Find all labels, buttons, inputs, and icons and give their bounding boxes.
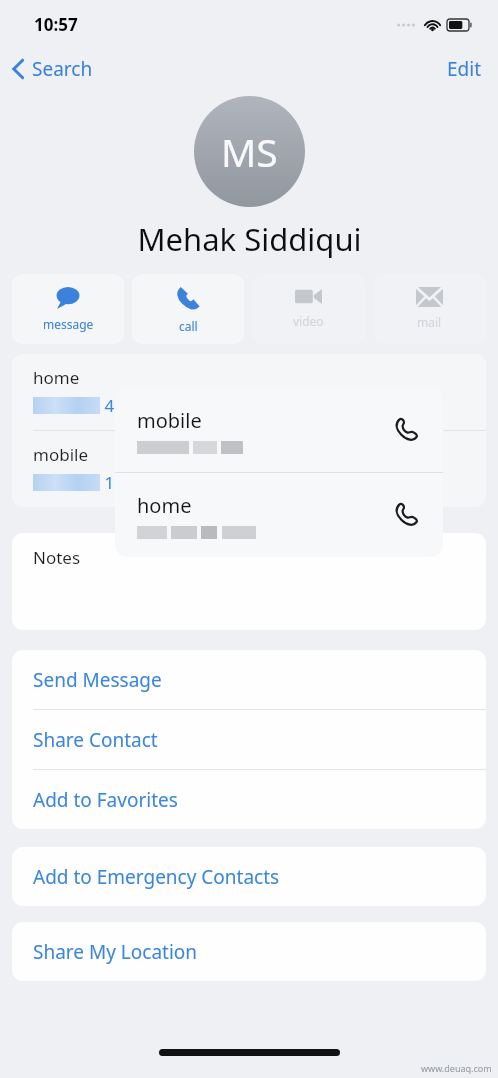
button[interactable]: mail bbox=[373, 274, 486, 344]
button[interactable]: Search bbox=[0, 52, 103, 86]
other: Call home bbox=[389, 498, 423, 532]
staticText: Edit bbox=[447, 56, 482, 82]
button[interactable]: Add to Favorites bbox=[12, 770, 486, 829]
button[interactable]: video bbox=[252, 274, 365, 344]
other: Call mobile bbox=[389, 413, 423, 447]
button[interactable]: Edit bbox=[431, 50, 498, 88]
staticText: home bbox=[137, 492, 192, 519]
staticText: Mehak Siddiqui bbox=[137, 218, 362, 260]
staticText: mobile bbox=[137, 407, 202, 434]
button[interactable]: home bbox=[115, 473, 443, 557]
button[interactable]: Add to Emergency Contacts bbox=[12, 847, 486, 906]
button[interactable]: Share My Location bbox=[12, 922, 486, 981]
staticText: www.deuaq.com bbox=[421, 1062, 492, 1074]
staticText: Add to Favorites bbox=[33, 787, 178, 813]
button[interactable]: call bbox=[132, 274, 244, 344]
button[interactable]: Share Contact bbox=[12, 710, 486, 769]
button[interactable]: message bbox=[12, 274, 124, 344]
staticText: 4 bbox=[100, 394, 115, 417]
button[interactable]: Notes bbox=[12, 533, 486, 630]
staticText: MS bbox=[221, 125, 278, 178]
staticText: home bbox=[33, 366, 80, 389]
button[interactable]: mobile bbox=[115, 388, 443, 472]
staticText: 1 bbox=[100, 471, 115, 494]
button[interactable]: Send Message bbox=[12, 650, 486, 709]
staticText: Notes bbox=[33, 546, 81, 569]
button[interactable]: MS bbox=[194, 96, 305, 207]
staticText: Share Contact bbox=[33, 727, 158, 753]
staticText: 10:57 bbox=[34, 13, 78, 36]
staticText: Search bbox=[32, 56, 93, 82]
staticText: Share My Location bbox=[33, 939, 198, 965]
staticText: video bbox=[293, 313, 324, 329]
button[interactable]: home bbox=[12, 354, 486, 430]
staticText: Send Message bbox=[33, 667, 162, 693]
staticText: call bbox=[179, 318, 198, 334]
staticText: Add to Emergency Contacts bbox=[33, 864, 280, 890]
staticText: mail bbox=[417, 314, 442, 330]
staticText: mobile bbox=[33, 443, 88, 466]
button[interactable]: mobile bbox=[12, 431, 486, 507]
staticText: message bbox=[43, 316, 94, 332]
